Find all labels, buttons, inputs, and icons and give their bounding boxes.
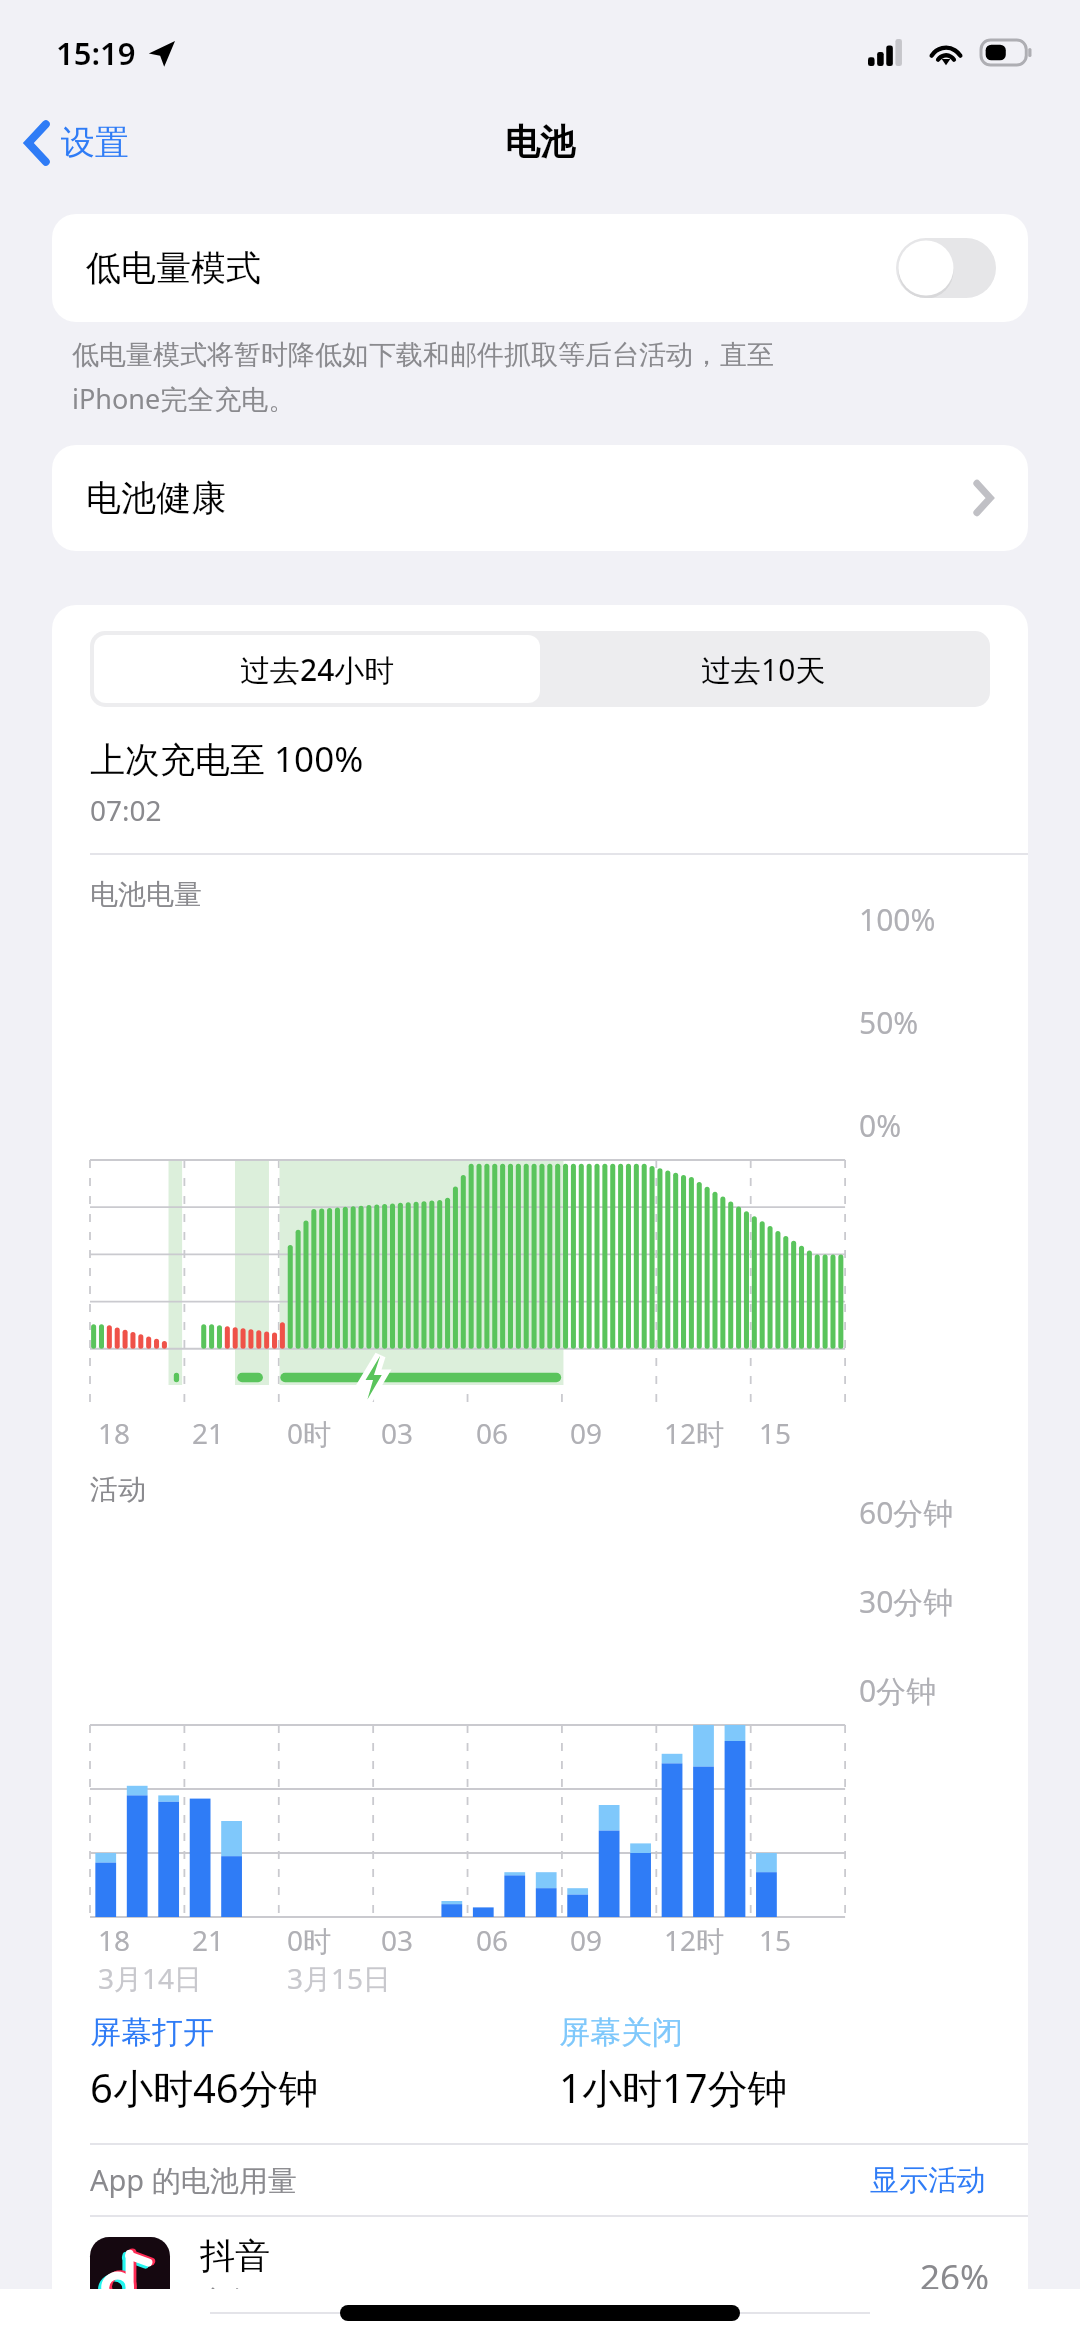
staticText: 屏幕关闭	[559, 2013, 683, 2052]
staticText: 过去10天	[701, 649, 826, 690]
staticText: 0时	[287, 1414, 332, 1452]
staticText: 3月14日	[98, 1959, 203, 1997]
staticText: 电池健康	[86, 476, 226, 520]
staticText: 电池	[505, 120, 575, 164]
staticText: 过去24小时	[240, 649, 395, 690]
staticText: 26%	[920, 2253, 990, 2301]
staticText: 0分钟	[859, 1670, 937, 1711]
staticText: 07:02	[90, 791, 162, 829]
staticText: 21	[192, 1414, 225, 1452]
staticText: 屏幕打开	[90, 2013, 214, 2052]
button[interactable]: 过去24小时	[94, 635, 540, 703]
staticText: 50%	[859, 1002, 919, 1043]
button[interactable]: 低电量模式	[52, 214, 1028, 322]
staticText: 上次充电至 100%	[90, 735, 364, 783]
staticText: 03	[381, 1921, 414, 1959]
staticText: 设置	[61, 121, 129, 164]
staticText: 18	[98, 1414, 131, 1452]
staticText: 18	[98, 1921, 131, 1959]
staticText: 03	[381, 1414, 414, 1452]
staticText: 6小时46分钟	[90, 2060, 319, 2115]
staticText: 音频	[200, 2284, 258, 2321]
staticText: 显示活动	[870, 2162, 986, 2199]
button[interactable]: 电池健康	[52, 445, 1028, 551]
staticText: 09	[570, 1921, 603, 1959]
staticText: 0时	[287, 1921, 332, 1959]
staticText: iPhone完全充电。	[72, 380, 296, 417]
button[interactable]: 抖音	[52, 2217, 1028, 2337]
staticText: App 的电池用量	[90, 2160, 297, 2200]
staticText: 60分钟	[859, 1492, 954, 1533]
staticText: 1小时17分钟	[559, 2060, 788, 2115]
staticText: 12时	[664, 1414, 725, 1452]
staticText: 06	[476, 1414, 509, 1452]
button[interactable]: 显示活动	[866, 2158, 990, 2203]
staticText: 低电量模式	[86, 246, 261, 290]
staticText: 12时	[664, 1921, 725, 1959]
staticText: 电池电量	[90, 877, 202, 912]
button[interactable]: 设置	[0, 111, 149, 174]
staticText: 09	[570, 1414, 603, 1452]
staticText: 15	[759, 1921, 792, 1959]
staticText: 100%	[859, 899, 936, 940]
staticText: 15:19	[56, 32, 136, 74]
button[interactable]: Low Power Mode	[896, 238, 996, 298]
button[interactable]: 过去10天	[540, 635, 986, 703]
staticText: 30分钟	[859, 1581, 954, 1622]
staticText: 抖音	[200, 2234, 270, 2278]
staticText: 低电量模式将暂时降低如下载和邮件抓取等后台活动，直至	[72, 338, 774, 372]
staticText: 0%	[859, 1105, 902, 1146]
staticText: 21	[192, 1921, 225, 1959]
staticText: 3月15日	[287, 1959, 392, 1997]
staticText: 06	[476, 1921, 509, 1959]
staticText: 15	[759, 1414, 792, 1452]
staticText: 活动	[90, 1472, 146, 1507]
